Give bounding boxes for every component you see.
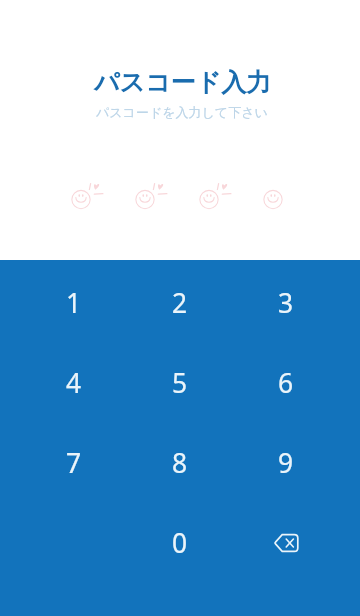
button[interactable]: 8 xyxy=(127,423,233,503)
staticText: 3 xyxy=(278,285,294,321)
button[interactable]: 6 xyxy=(233,343,339,423)
staticText: 8 xyxy=(172,445,188,481)
staticText: 5 xyxy=(172,365,188,401)
staticText: 1 xyxy=(66,285,82,321)
staticText: 0 xyxy=(172,525,188,561)
button[interactable]: 5 xyxy=(127,343,233,423)
button[interactable]: Delete xyxy=(233,503,339,583)
button[interactable]: 2 xyxy=(127,263,233,343)
staticText: パスコード入力 xyxy=(94,67,272,98)
button[interactable]: 9 xyxy=(233,423,339,503)
button[interactable]: 1 xyxy=(21,263,127,343)
staticText: パスコードを入力して下さい xyxy=(96,104,268,120)
staticText: 9 xyxy=(278,445,294,481)
staticText: 7 xyxy=(66,445,82,481)
staticText: 6 xyxy=(278,365,294,401)
staticText: 2 xyxy=(172,285,188,321)
button[interactable]: 3 xyxy=(233,263,339,343)
staticText: 4 xyxy=(66,365,82,401)
button[interactable]: 4 xyxy=(21,343,127,423)
button[interactable]: 0 xyxy=(127,503,233,583)
button[interactable]: 7 xyxy=(21,423,127,503)
